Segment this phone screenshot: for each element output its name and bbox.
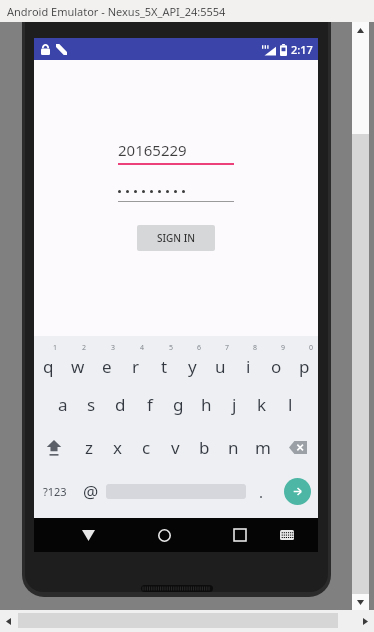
- button[interactable]: .: [246, 469, 276, 514]
- button[interactable]: j: [220, 383, 248, 426]
- staticText: 2:17: [291, 42, 313, 57]
- staticText: u: [215, 355, 226, 378]
- staticText: ?123: [43, 484, 67, 499]
- button[interactable]: n: [219, 426, 248, 469]
- button[interactable]: 1: [34, 341, 63, 383]
- staticText: x: [113, 436, 122, 459]
- staticText: d: [115, 393, 126, 416]
- staticText: a: [58, 393, 68, 416]
- button[interactable]: Backspace: [277, 426, 318, 469]
- button[interactable]: m: [248, 426, 277, 469]
- button[interactable]: 9: [262, 341, 290, 383]
- button[interactable]: SIGN IN: [137, 225, 215, 251]
- button[interactable]: 4: [121, 341, 150, 383]
- button[interactable]: a: [48, 383, 77, 426]
- staticText: z: [85, 436, 93, 459]
- staticText: g: [173, 393, 184, 416]
- button[interactable]: Shift: [34, 426, 74, 469]
- staticText: k: [257, 393, 267, 416]
- button[interactable]: f: [135, 383, 164, 426]
- button[interactable]: v: [161, 426, 190, 469]
- button[interactable]: k: [248, 383, 276, 426]
- staticText: 8: [253, 343, 258, 353]
- staticText: b: [199, 436, 210, 459]
- button[interactable]: x: [103, 426, 132, 469]
- staticText: @: [83, 480, 99, 503]
- button[interactable]: z: [74, 426, 103, 469]
- staticText: m: [255, 436, 271, 459]
- button[interactable]: 3: [92, 341, 121, 383]
- button[interactable]: 5: [150, 341, 178, 383]
- button[interactable]: 20165229: [118, 140, 234, 165]
- button[interactable]: @: [76, 469, 106, 514]
- button[interactable]: 2: [63, 341, 92, 383]
- button[interactable]: b: [190, 426, 219, 469]
- staticText: 2: [82, 343, 87, 353]
- staticText: 1: [53, 343, 58, 353]
- staticText: 9: [281, 343, 286, 353]
- staticText: SIGN IN: [157, 231, 195, 245]
- staticText: Android Emulator - Nexus_5X_API_24:5554: [7, 4, 226, 19]
- staticText: 7: [225, 343, 230, 353]
- staticText: 20165229: [118, 140, 187, 160]
- button[interactable]: Change keyboard: [272, 520, 302, 550]
- button[interactable]: l: [276, 383, 304, 426]
- button[interactable]: Back: [71, 518, 105, 552]
- staticText: f: [147, 393, 153, 416]
- button[interactable]: g: [164, 383, 192, 426]
- staticText: i: [246, 355, 251, 378]
- staticText: e: [102, 355, 112, 378]
- button[interactable]: d: [106, 383, 135, 426]
- staticText: j: [232, 393, 237, 416]
- staticText: q: [43, 355, 54, 378]
- button[interactable]: Scroll right: [356, 610, 374, 632]
- button[interactable]: 8: [234, 341, 262, 383]
- staticText: 0: [309, 343, 314, 353]
- button[interactable]: [118, 183, 234, 202]
- staticText: 4: [140, 343, 145, 353]
- button[interactable]: Home: [147, 518, 181, 552]
- button[interactable]: Scroll left: [0, 610, 16, 632]
- staticText: 5: [169, 343, 174, 353]
- staticText: h: [201, 393, 212, 416]
- staticText: r: [132, 355, 140, 378]
- button[interactable]: c: [132, 426, 161, 469]
- staticText: t: [161, 355, 168, 378]
- staticText: c: [142, 436, 151, 459]
- button[interactable]: 7: [206, 341, 234, 383]
- staticText: y: [188, 355, 197, 378]
- staticText: n: [228, 436, 239, 459]
- staticText: s: [87, 393, 96, 416]
- staticText: 6: [197, 343, 202, 353]
- staticText: 3: [111, 343, 116, 353]
- staticText: w: [71, 355, 85, 378]
- staticText: p: [299, 355, 310, 378]
- button[interactable]: s: [77, 383, 106, 426]
- button[interactable]: Scroll up: [352, 22, 369, 38]
- button[interactable]: Scroll down: [352, 594, 369, 610]
- staticText: .: [259, 482, 264, 502]
- button[interactable]: 0: [290, 341, 318, 383]
- staticText: l: [288, 393, 293, 416]
- button[interactable]: Recent apps: [223, 518, 257, 552]
- button[interactable]: Enter: [284, 478, 311, 505]
- button[interactable]: h: [192, 383, 220, 426]
- button[interactable]: 6: [178, 341, 206, 383]
- staticText: o: [271, 355, 282, 378]
- staticText: v: [171, 436, 180, 459]
- button[interactable]: ?123: [34, 469, 76, 514]
